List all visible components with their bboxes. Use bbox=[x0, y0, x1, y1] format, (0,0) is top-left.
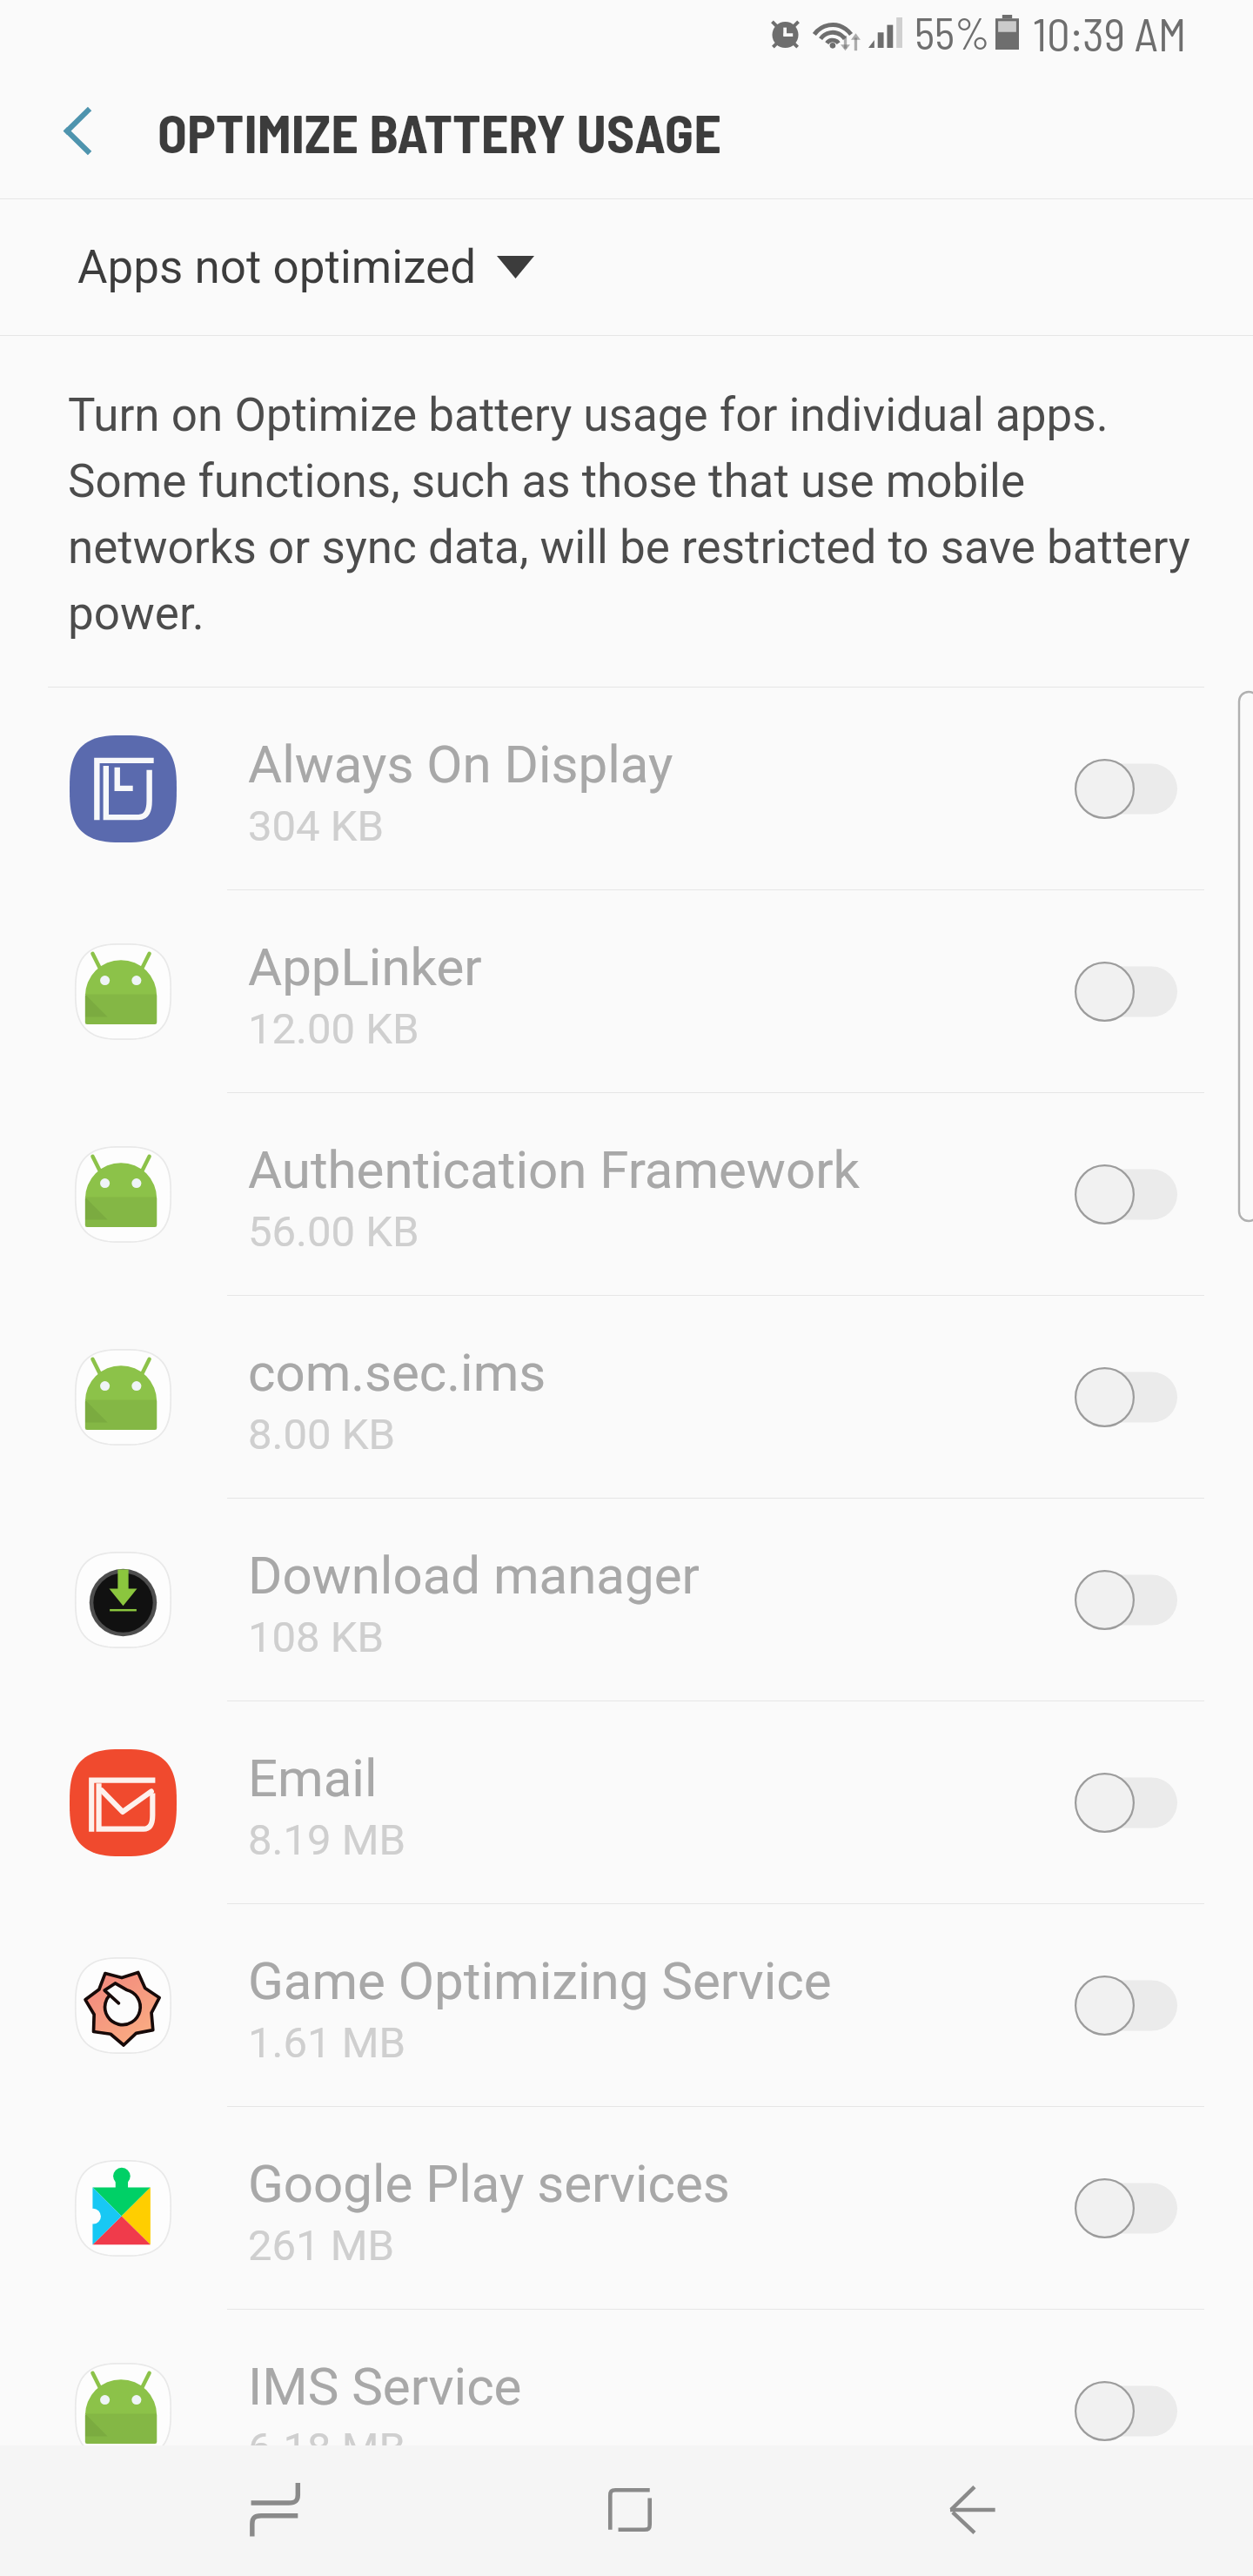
button[interactable]: Toggle optimization for AppLinker bbox=[1075, 962, 1177, 1022]
button[interactable]: Authentication Framework bbox=[0, 1093, 1253, 1295]
button[interactable]: Toggle optimization for Download manager bbox=[1075, 1570, 1177, 1630]
staticText: 56.00 KB bbox=[248, 1207, 419, 1257]
button[interactable]: Home bbox=[552, 2445, 708, 2575]
button[interactable]: Toggle optimization for Game Optimizing … bbox=[1075, 1976, 1177, 2036]
staticText: Authentication Framework bbox=[248, 1139, 860, 1200]
button[interactable]: Toggle optimization for Authentication F… bbox=[1075, 1164, 1177, 1224]
staticText: 6.18 MB bbox=[248, 2424, 405, 2473]
staticText: IMS Service bbox=[248, 2356, 522, 2417]
button[interactable]: Apps not optimized bbox=[0, 199, 1253, 335]
staticText: Apps not optimized bbox=[77, 240, 477, 294]
staticText: com.sec.ims bbox=[248, 1342, 546, 1403]
button[interactable]: Recent apps bbox=[198, 2445, 355, 2575]
staticText: Download manager bbox=[248, 1545, 700, 1606]
button[interactable]: com.sec.ims bbox=[0, 1296, 1253, 1498]
button[interactable]: Toggle optimization for Email bbox=[1075, 1773, 1177, 1833]
staticText: 108 KB bbox=[248, 1613, 385, 1662]
staticText: Turn on Optimize battery usage for indiv… bbox=[68, 379, 1190, 643]
button[interactable]: Game Optimizing Service bbox=[0, 1904, 1253, 2106]
button[interactable]: IMS Service bbox=[0, 2310, 1253, 2512]
staticText: 8.19 MB bbox=[248, 1815, 405, 1865]
staticText: 55% bbox=[915, 6, 990, 58]
button[interactable]: AppLinker bbox=[0, 890, 1253, 1092]
staticText: Always On Display bbox=[248, 734, 673, 795]
staticText: Email bbox=[248, 1748, 378, 1808]
staticText: 12.00 KB bbox=[248, 1004, 419, 1054]
button[interactable]: Toggle optimization for Google Play serv… bbox=[1075, 2178, 1177, 2238]
staticText: Game Optimizing Service bbox=[248, 1950, 832, 2011]
button[interactable]: Toggle optimization for IMS Service bbox=[1075, 2381, 1177, 2441]
button[interactable]: Google Play services bbox=[0, 2107, 1253, 2309]
staticText: 1.61 MB bbox=[248, 2018, 405, 2068]
staticText: 8.00 KB bbox=[248, 1410, 395, 1459]
button[interactable]: Toggle optimization for com.sec.ims bbox=[1075, 1367, 1177, 1427]
staticText: 10:39 AM bbox=[1033, 5, 1187, 59]
button[interactable]: Back bbox=[894, 2445, 1050, 2575]
button[interactable]: Toggle optimization for Always On Displa… bbox=[1075, 759, 1177, 819]
staticText: Google Play services bbox=[248, 2153, 730, 2214]
staticText: 304 KB bbox=[248, 802, 385, 851]
staticText: AppLinker bbox=[248, 936, 482, 997]
button[interactable]: Always On Display bbox=[0, 688, 1253, 889]
button[interactable]: Download manager bbox=[0, 1499, 1253, 1701]
staticText: OPTIMIZE BATTERY USAGE bbox=[157, 99, 721, 164]
button[interactable]: Navigate up bbox=[41, 94, 114, 167]
button[interactable]: Email bbox=[0, 1701, 1253, 1903]
staticText: 261 MB bbox=[248, 2221, 395, 2271]
